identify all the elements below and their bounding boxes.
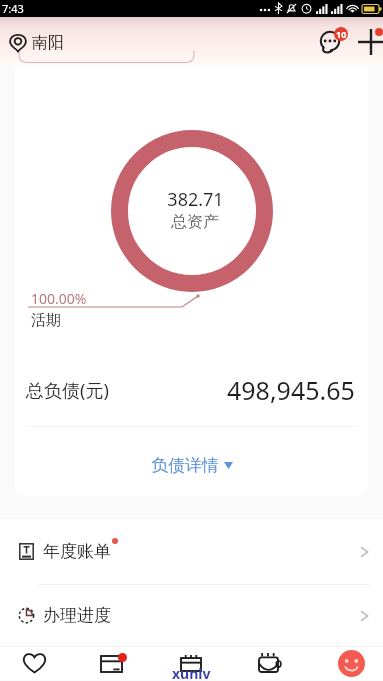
staticText: 382.71 [167, 187, 224, 212]
button[interactable]: 年度账单 [0, 519, 383, 584]
button[interactable]: Calendar [152, 646, 229, 680]
staticText: 7:43 [2, 1, 24, 16]
button[interactable]: Add [352, 23, 383, 61]
button[interactable]: Messages [311, 23, 349, 61]
staticText: 498,945.65 [227, 373, 355, 407]
staticText: 总负债(元) [26, 378, 109, 403]
staticText: 10 [336, 28, 347, 40]
staticText: 100.00% [31, 289, 87, 308]
button[interactable]: Cards [76, 646, 152, 680]
staticText: 南阳 [32, 33, 64, 53]
staticText: xunlv [172, 664, 211, 681]
button[interactable]: Favorites [0, 646, 76, 680]
button[interactable]: Wallet [229, 646, 306, 680]
staticText: 活期 [31, 311, 61, 330]
staticText: 年度账单 [43, 541, 111, 562]
staticText: 办理进度 [43, 605, 111, 626]
button[interactable]: 南阳 [6, 30, 67, 55]
staticText: 总资产 [171, 212, 219, 232]
button[interactable]: Profile [306, 646, 383, 680]
button[interactable]: 办理进度 [0, 585, 383, 646]
button[interactable]: 负债详情 [141, 449, 243, 482]
staticText: 负债详情 [151, 455, 219, 476]
